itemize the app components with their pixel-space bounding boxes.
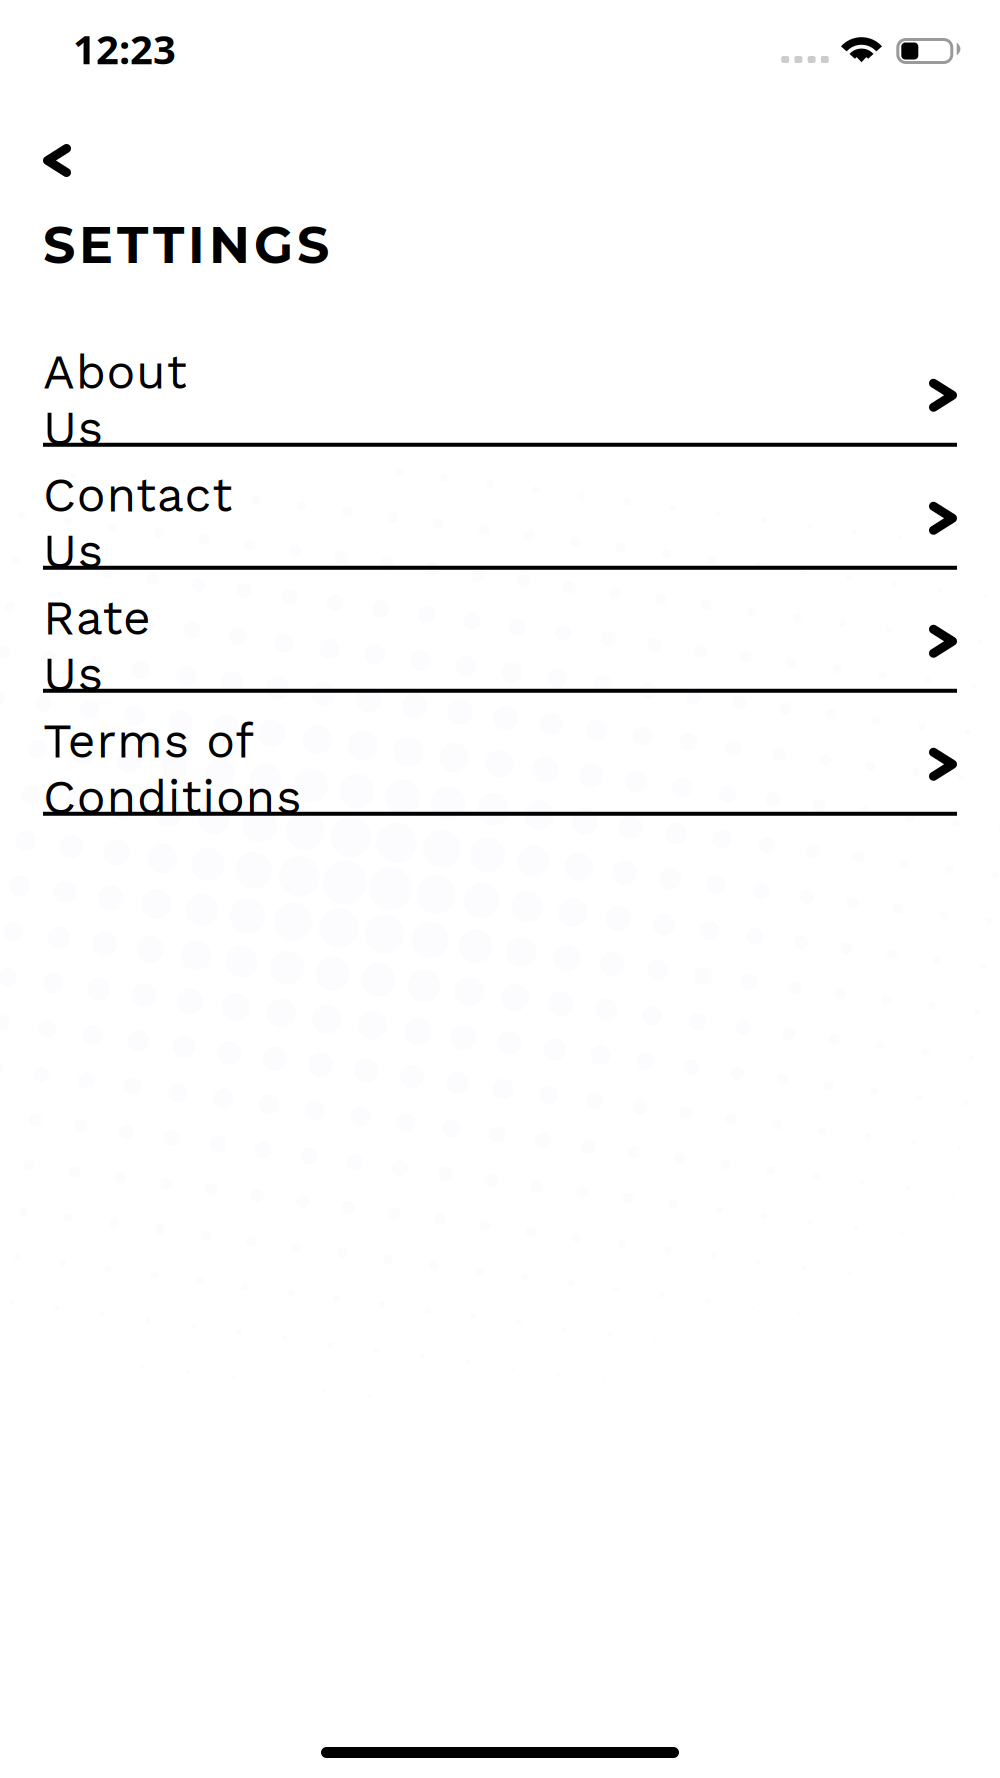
- staticText: Terms of Conditions: [43, 713, 528, 769]
- button[interactable]: Back: [43, 130, 97, 191]
- button[interactable]: About Us: [43, 344, 957, 447]
- staticText: Rate Us: [43, 590, 228, 646]
- staticText: SETTINGS: [43, 214, 329, 276]
- button[interactable]: Rate Us: [43, 590, 957, 693]
- staticText: About Us: [43, 344, 264, 400]
- staticText: 12:23: [73, 21, 176, 76]
- button[interactable]: Terms of Conditions: [43, 713, 957, 816]
- button[interactable]: Contact Us: [43, 467, 957, 570]
- staticText: Contact Us: [43, 467, 309, 523]
